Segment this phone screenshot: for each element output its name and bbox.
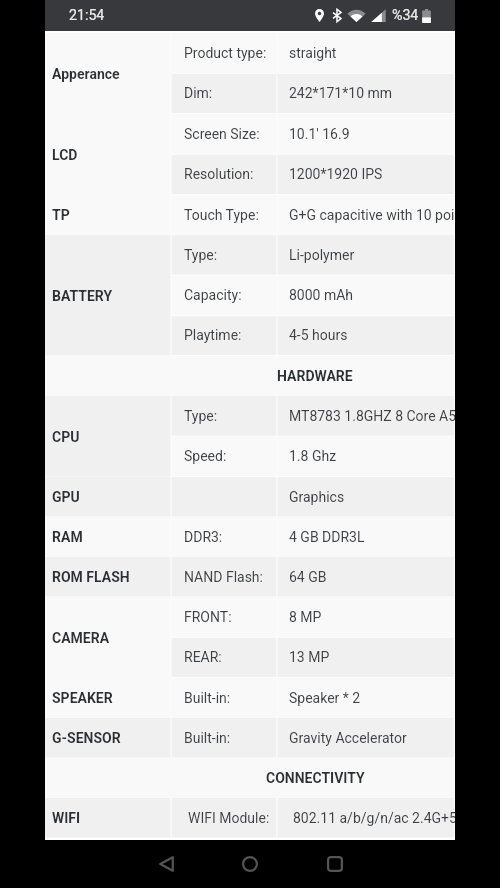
button[interactable]: Playtime:	[171, 315, 277, 355]
button[interactable]: WIFI	[45, 798, 171, 838]
staticText: Graphics	[289, 489, 345, 505]
button[interactable]: Resolution:	[171, 154, 277, 194]
staticText: SPEAKER	[52, 690, 113, 706]
staticText: 64 GB	[289, 569, 327, 585]
button[interactable]: LCD	[45, 114, 171, 195]
staticText: Resolution:	[184, 166, 254, 182]
staticText: WIFI Module:	[188, 810, 270, 826]
staticText: straight	[289, 45, 337, 61]
staticText: Gravity Accelerator	[289, 730, 407, 746]
staticText: 4-5 hours	[289, 327, 348, 343]
staticText: 1200*1920 IPS	[289, 166, 383, 182]
staticText: 242*171*10 mm	[289, 85, 393, 101]
button[interactable]: Touch Type:	[171, 195, 277, 235]
staticText: MT8783 1.8GHZ 8 Core A53	[289, 408, 455, 424]
staticText: BATTERY	[52, 288, 113, 304]
staticText: G+G capacitive with 10 points	[289, 207, 455, 223]
button[interactable]: Screen Size:	[171, 114, 277, 154]
button[interactable]: NAND Flash:	[171, 557, 277, 597]
button[interactable]: Speed:	[171, 436, 277, 476]
staticText: 8 MP	[289, 609, 322, 625]
staticText: TP	[52, 207, 70, 223]
staticText: Speed:	[184, 448, 227, 464]
staticText: Speaker * 2	[289, 690, 361, 706]
staticText: HARDWARE	[277, 368, 353, 384]
button[interactable]: WIFI Module:	[171, 798, 277, 838]
button[interactable]: Type:	[171, 235, 277, 275]
button[interactable]: G-SENSOR	[45, 718, 171, 758]
button[interactable]: FRONT:	[171, 597, 277, 637]
staticText: 802.11 a/b/g/n/ac 2.4G+5G	[293, 810, 455, 826]
staticText: Built-in:	[184, 730, 231, 746]
staticText: Apperance	[52, 66, 120, 82]
staticText: CPU	[52, 429, 80, 445]
staticText: Built-in:	[184, 690, 231, 706]
button[interactable]: Apperance	[45, 33, 171, 114]
staticText: Type:	[184, 408, 218, 424]
button[interactable]: HARDWARE	[45, 356, 454, 396]
staticText: ROM FLASH	[52, 569, 130, 585]
staticText: RAM	[52, 529, 83, 545]
button[interactable]: CPU	[45, 396, 171, 477]
staticText: Li-polymer	[289, 247, 355, 263]
button[interactable]: Product type:	[171, 33, 277, 73]
button[interactable]: DDR3:	[171, 517, 277, 557]
button[interactable]: Back	[142, 840, 190, 888]
button[interactable]: REAR:	[171, 637, 277, 677]
staticText: Product type:	[184, 45, 267, 61]
button[interactable]: Type:	[171, 396, 277, 436]
staticText: Touch Type:	[184, 207, 259, 223]
staticText: 8000 mAh	[289, 287, 354, 303]
button[interactable]: GPU	[45, 477, 171, 517]
button[interactable]: Built-in:	[171, 718, 277, 758]
button[interactable]: Built-in:	[171, 678, 277, 718]
button[interactable]: ROM FLASH	[45, 557, 171, 597]
staticText: 1.8 Ghz	[289, 448, 337, 464]
staticText: LCD	[52, 147, 78, 163]
button[interactable]: Dim:	[171, 73, 277, 113]
button[interactable]: Recent apps	[311, 840, 359, 888]
staticText: Capacity:	[184, 287, 242, 303]
staticText: 10.1' 16.9	[289, 126, 350, 142]
staticText: GPU	[52, 489, 80, 505]
staticText: WIFI	[52, 810, 81, 826]
button[interactable]: CONNECTIVITY	[45, 758, 454, 798]
button[interactable]: RAM	[45, 517, 171, 557]
staticText: CONNECTIVITY	[266, 770, 365, 786]
staticText: Dim:	[184, 85, 213, 101]
button[interactable]: Capacity:	[171, 275, 277, 315]
button[interactable]: BATTERY	[45, 235, 171, 356]
staticText: REAR:	[184, 649, 222, 665]
button[interactable]: SPEAKER	[45, 678, 171, 718]
staticText: 21:54	[69, 7, 105, 24]
staticText: Screen Size:	[184, 126, 260, 142]
staticText: Type:	[184, 247, 218, 263]
staticText: G-SENSOR	[52, 730, 121, 746]
staticText: DDR3:	[184, 529, 223, 545]
staticText: CAMERA	[52, 630, 110, 646]
staticText: 13 MP	[289, 649, 330, 665]
button[interactable]: Home	[226, 840, 274, 888]
staticText: 4 GB DDR3L	[289, 529, 365, 545]
staticText: Playtime:	[184, 327, 242, 343]
staticText: %34	[392, 7, 419, 24]
button[interactable]: TP	[45, 195, 171, 235]
button[interactable]: CAMERA	[45, 597, 171, 678]
staticText: FRONT:	[184, 609, 232, 625]
staticText: NAND Flash:	[184, 569, 263, 585]
